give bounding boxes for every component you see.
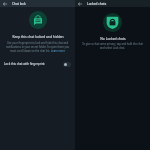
staticText: Chat lock — [12, 2, 26, 6]
staticText: To give a chat some privacy, tap and hol… — [82, 42, 143, 50]
button[interactable]: Lock this chat with fingerprint toggle — [63, 62, 71, 67]
staticText: Locked chats — [87, 2, 107, 6]
staticText: No Locked chats — [100, 36, 126, 40]
button[interactable]: Back — [75, 0, 85, 7]
staticText: Use your fingerprint to lock and hide th… — [4, 41, 71, 53]
staticText: Lock this chat with fingerprint — [4, 62, 63, 66]
staticText: Keep this chat locked and hidden — [12, 34, 64, 38]
button[interactable]: Back — [0, 0, 10, 7]
button[interactable]: Lock this chat with fingerprint — [0, 59, 75, 69]
